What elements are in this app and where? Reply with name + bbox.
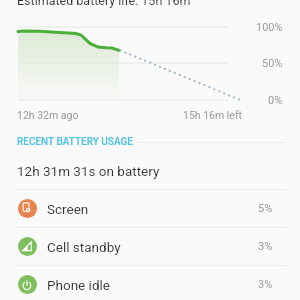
staticText: RECENT BATTERY USAGE bbox=[17, 136, 133, 148]
button[interactable]: Screen bbox=[0, 190, 300, 227]
staticText: 12h 32m ago bbox=[17, 109, 79, 121]
staticText: 50% bbox=[262, 57, 283, 70]
staticText: 12h 31m 31s on battery bbox=[17, 163, 160, 179]
staticText: 100% bbox=[256, 21, 283, 34]
staticText: 5% bbox=[258, 202, 273, 215]
button[interactable]: Phone idle bbox=[0, 266, 300, 300]
staticText: Cell standby bbox=[47, 239, 121, 255]
staticText: 3% bbox=[258, 240, 273, 253]
staticText: 0% bbox=[268, 94, 283, 107]
staticText: Screen bbox=[47, 201, 89, 217]
staticText: Phone idle bbox=[47, 277, 110, 293]
button[interactable]: Cell standby bbox=[0, 228, 300, 265]
staticText: 15h 16m left bbox=[183, 109, 243, 121]
staticText: 3% bbox=[258, 278, 273, 291]
staticText: Estimated battery life: 15h 16m bbox=[17, 0, 191, 8]
